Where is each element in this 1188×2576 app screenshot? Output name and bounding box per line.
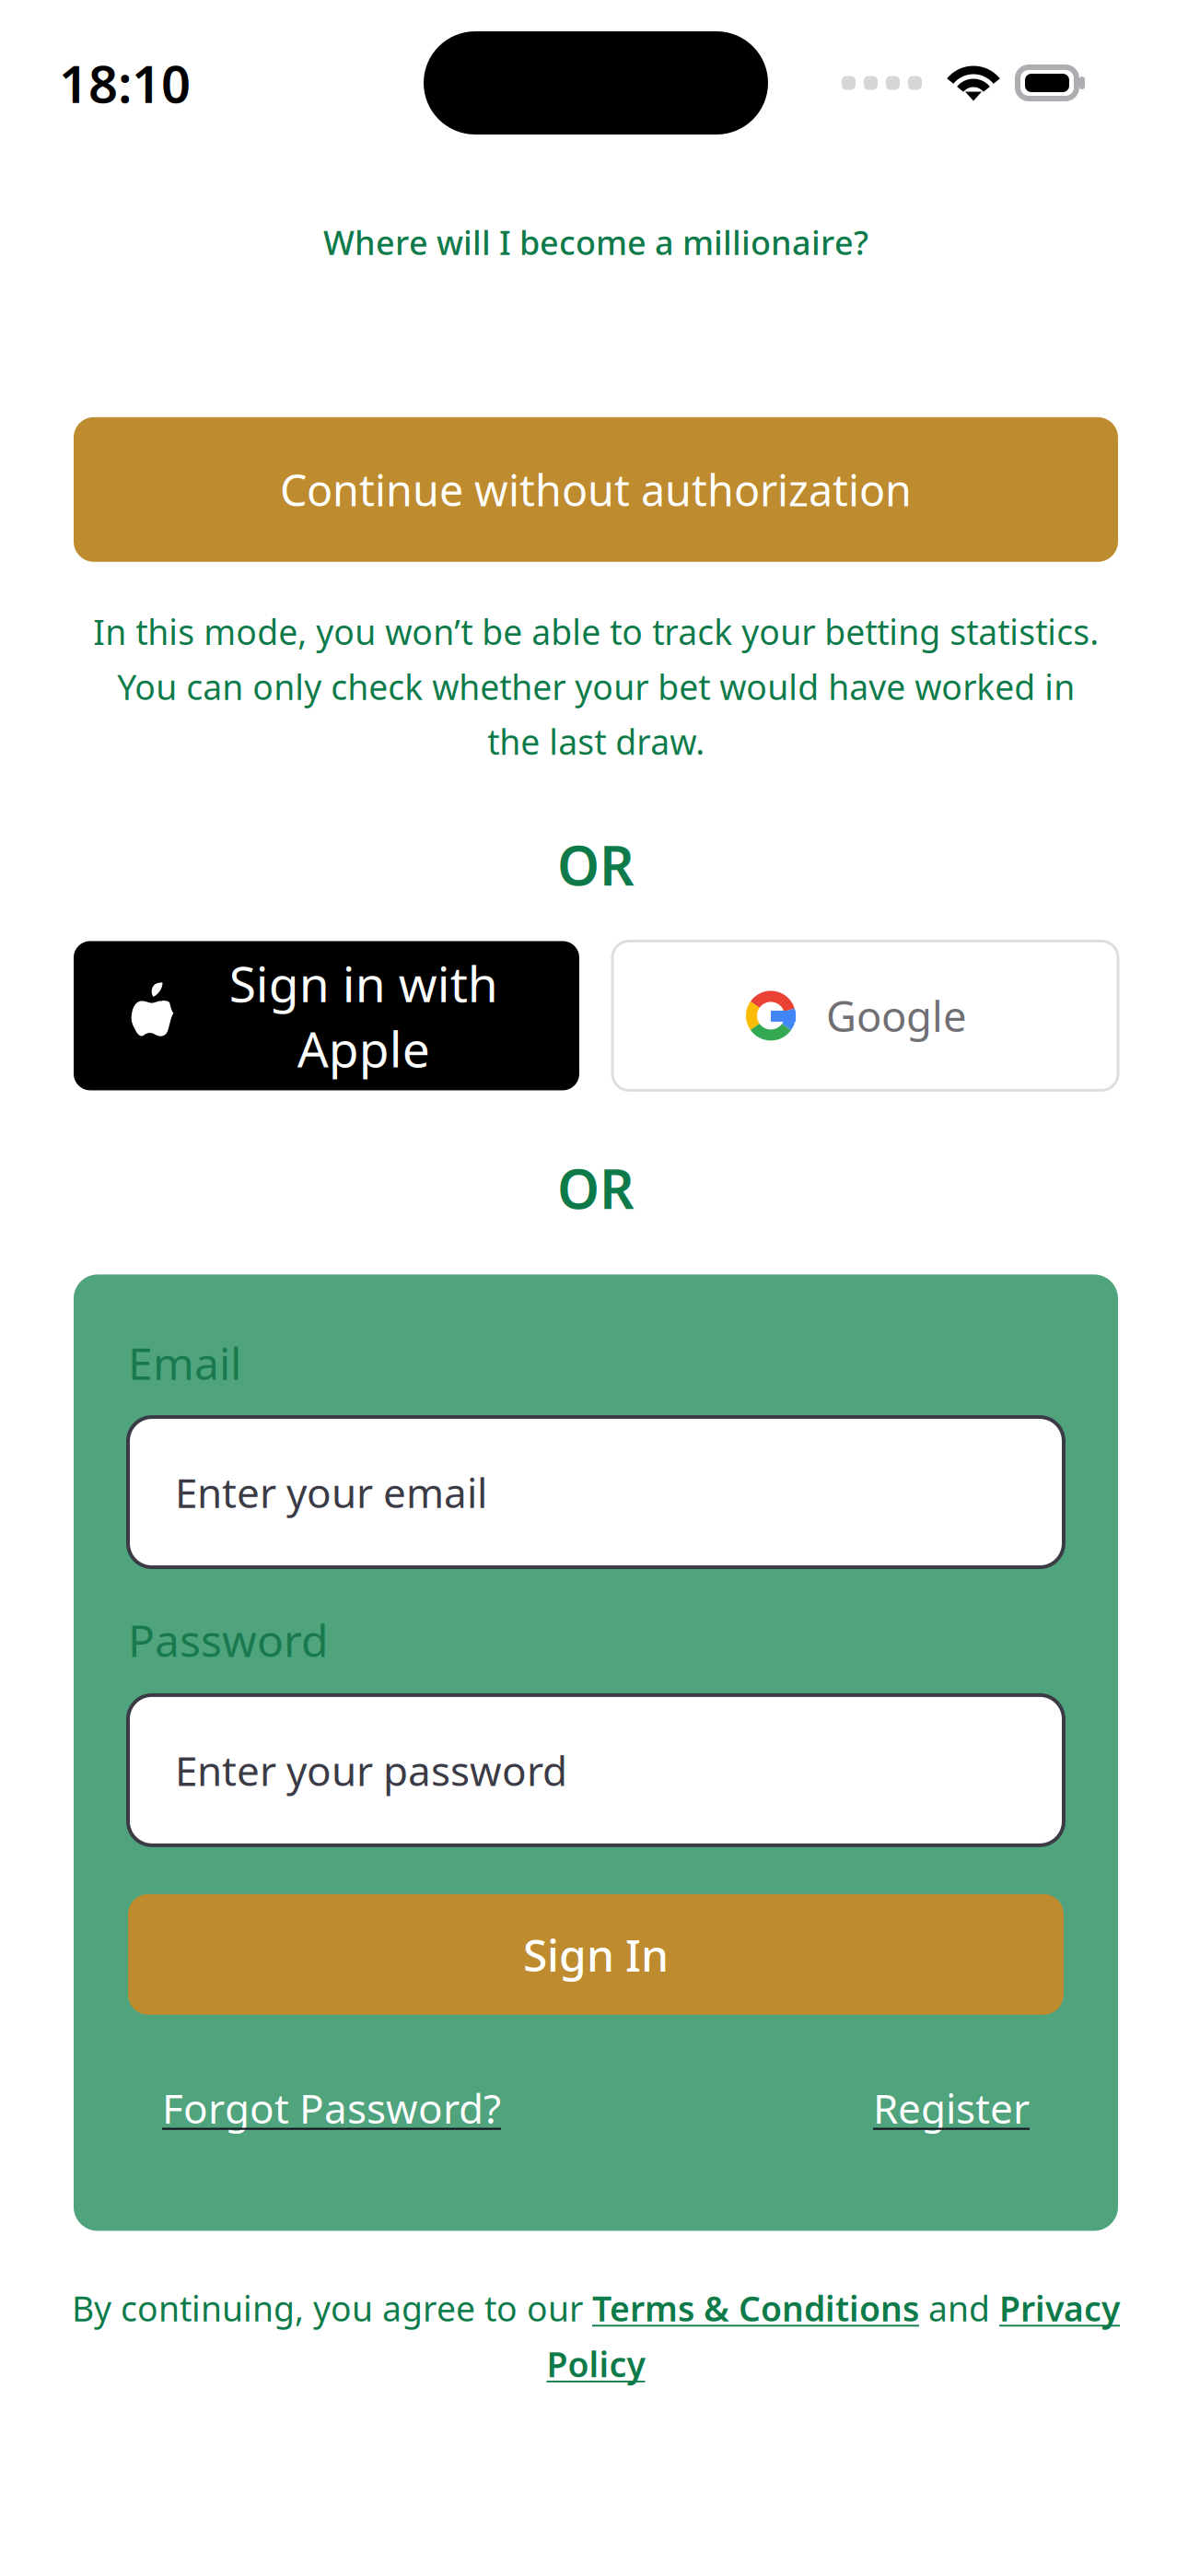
- staticText: Password: [128, 1611, 329, 1669]
- staticText: Enter your email: [175, 1465, 487, 1519]
- button[interactable]: Register: [873, 2081, 1030, 2135]
- staticText: 18:10: [59, 49, 191, 117]
- button[interactable]: Google: [612, 941, 1118, 1090]
- button[interactable]: Terms & Conditions: [592, 2285, 919, 2331]
- staticText: Where will I become a millionaire?: [323, 220, 868, 264]
- button[interactable]: Enter your email: [128, 1417, 1064, 1567]
- staticText: Enter your password: [175, 1743, 567, 1797]
- staticText: Sign in with Apple: [229, 950, 498, 1081]
- button[interactable]: Enter your password: [128, 1695, 1064, 1845]
- staticText: Terms & Conditions: [592, 2285, 919, 2331]
- staticText: Register: [873, 2081, 1030, 2135]
- staticText: Privacy: [999, 2285, 1120, 2331]
- staticText: Email: [128, 1334, 241, 1392]
- staticText: Sign In: [523, 1925, 669, 1984]
- button[interactable]: Policy: [547, 2341, 645, 2387]
- button[interactable]: Sign in with Apple: [74, 941, 579, 1090]
- staticText: and: [919, 2285, 999, 2331]
- staticText: OR: [557, 1152, 635, 1224]
- staticText: Google: [826, 988, 967, 1043]
- button[interactable]: Continue without authorization: [74, 417, 1118, 562]
- button[interactable]: Sign In: [128, 1894, 1064, 2015]
- staticText: Forgot Password?: [162, 2081, 501, 2135]
- staticText: Policy: [547, 2341, 645, 2387]
- staticText: OR: [557, 829, 635, 900]
- button[interactable]: Forgot Password?: [162, 2081, 501, 2135]
- staticText: By continuing, you agree to our: [72, 2285, 592, 2331]
- staticText: In this mode, you won’t be able to track…: [93, 609, 1099, 764]
- staticText: Continue without authorization: [280, 461, 912, 518]
